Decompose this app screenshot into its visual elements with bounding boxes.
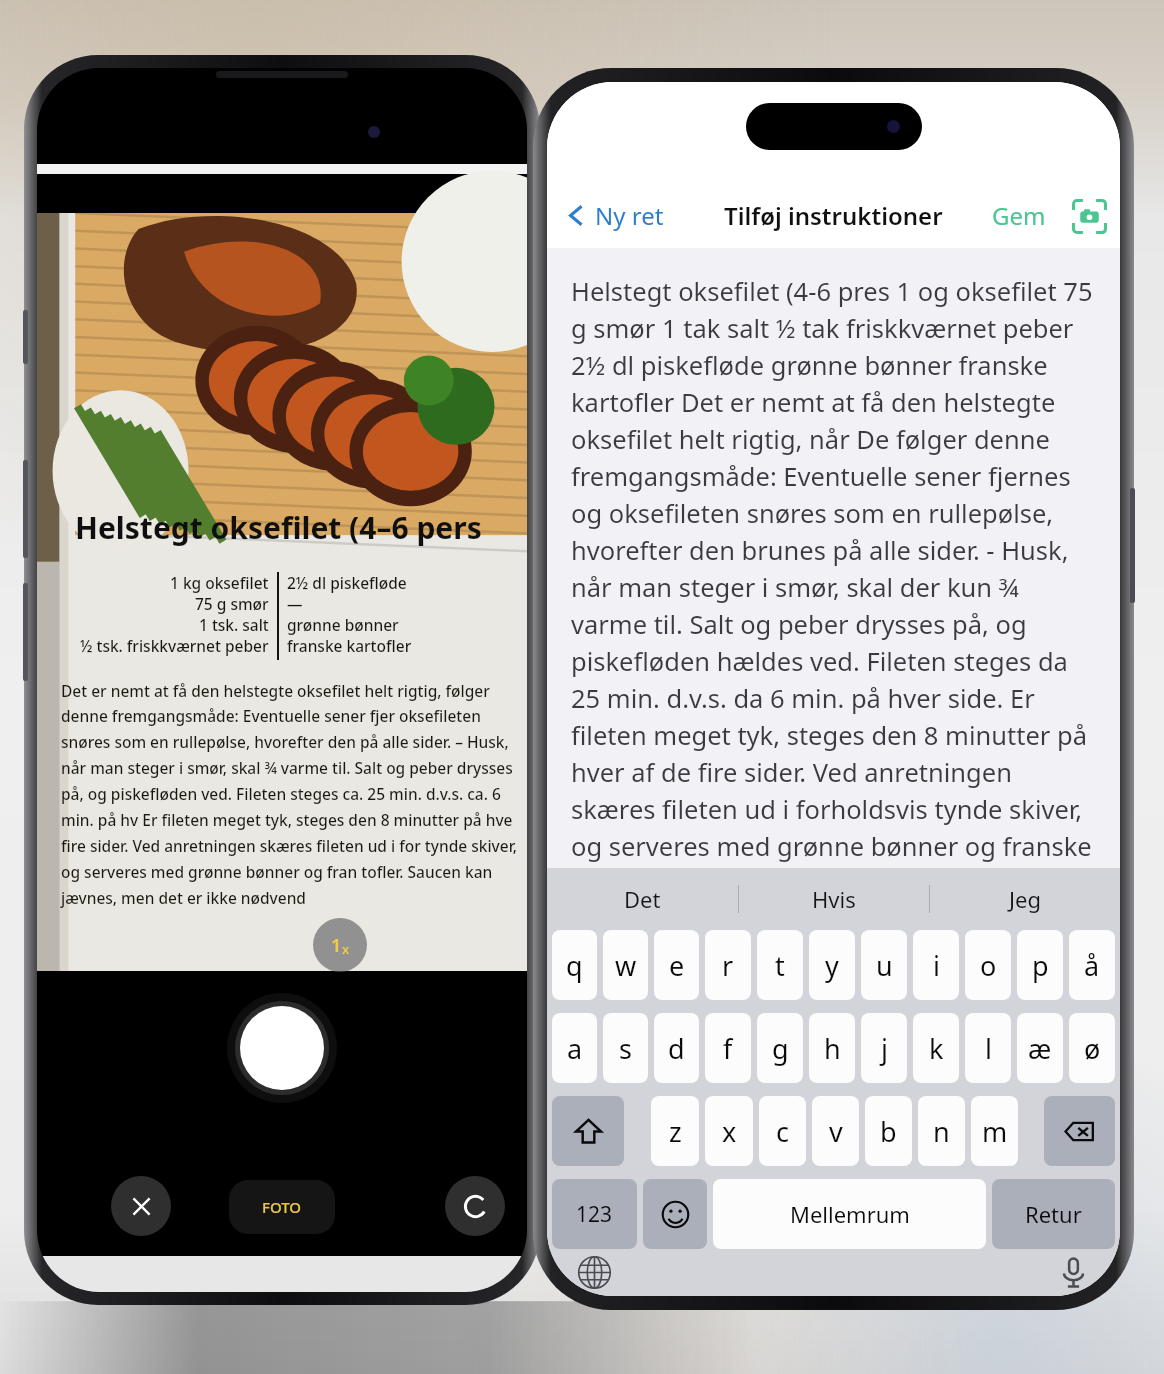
staticText: k (929, 1030, 944, 1067)
button[interactable]: Retur (992, 1179, 1115, 1249)
staticText: Det er nemt at få den helstegte oksefile… (61, 680, 527, 909)
button[interactable]: h (809, 1013, 855, 1083)
staticText: x (722, 1113, 737, 1150)
button[interactable]: Mellemrum (713, 1179, 986, 1249)
button[interactable]: y (809, 930, 855, 1000)
staticText: Ny ret (595, 199, 664, 232)
staticText: Jeg (1009, 884, 1041, 914)
staticText: i (933, 947, 940, 984)
button[interactable]: t (757, 930, 803, 1000)
button[interactable]: Hvis (739, 868, 929, 930)
staticText: b (880, 1113, 897, 1150)
button[interactable]: v (812, 1096, 859, 1166)
button[interactable]: s (603, 1013, 648, 1083)
staticText: ø (1084, 1030, 1101, 1067)
staticText: FOTO (262, 1197, 302, 1217)
button[interactable]: m (971, 1096, 1018, 1166)
staticText: a (567, 1030, 583, 1067)
button[interactable]: u (861, 930, 907, 1000)
staticText: l (985, 1030, 992, 1067)
button[interactable]: Switch camera (445, 1176, 505, 1236)
button[interactable]: Helstegt oksefilet (4–6 pers (37, 213, 527, 971)
staticText: w (615, 947, 637, 984)
button[interactable]: 123 (552, 1179, 637, 1249)
button[interactable]: n (918, 1096, 965, 1166)
staticText: d (668, 1030, 685, 1067)
staticText: g (772, 1030, 789, 1067)
button[interactable]: o (965, 930, 1011, 1000)
button[interactable]: Take photo (227, 993, 337, 1103)
staticText: x (342, 940, 350, 958)
button[interactable]: Dictate (1046, 1249, 1100, 1296)
staticText: t (775, 947, 785, 984)
button[interactable]: w (603, 930, 648, 1000)
button[interactable]: Change keyboard (567, 1249, 621, 1296)
staticText: Det (624, 884, 661, 914)
button[interactable]: Gem (986, 191, 1052, 240)
button[interactable]: ø (1069, 1013, 1115, 1083)
button[interactable]: d (654, 1013, 699, 1083)
staticText: grønne bønner (287, 614, 399, 635)
staticText: 123 (576, 1200, 613, 1229)
button[interactable]: Helstegt oksefilet (4-6 pres 1 og oksefi… (547, 248, 1120, 868)
staticText: q (566, 947, 583, 984)
staticText: ½ tsk. friskkværnet peber (80, 635, 269, 656)
staticText: 2½ dl piskefløde (287, 572, 407, 593)
button[interactable]: b (865, 1096, 912, 1166)
staticText: Mellemrum (790, 1199, 910, 1229)
staticText: v (829, 1113, 843, 1150)
staticText: z (669, 1113, 682, 1150)
staticText: Helstegt oksefilet (4-6 pres 1 og oksefi… (571, 274, 1098, 868)
staticText: p (1032, 947, 1049, 984)
staticText: å (1084, 947, 1100, 984)
button[interactable]: j (861, 1013, 907, 1083)
staticText: æ (1028, 1030, 1052, 1067)
button[interactable]: Zoom 1x (313, 918, 367, 972)
staticText: r (722, 947, 734, 984)
staticText: 1 kg oksefilet (170, 572, 269, 593)
button[interactable]: k (913, 1013, 959, 1083)
staticText: Hvis (812, 884, 856, 914)
button[interactable]: c (759, 1096, 806, 1166)
button[interactable]: Jeg (930, 868, 1120, 930)
button[interactable]: i (913, 930, 959, 1000)
staticText: f (723, 1030, 733, 1067)
staticText: o (980, 947, 997, 984)
staticText: y (825, 947, 839, 984)
button[interactable]: a (552, 1013, 597, 1083)
button[interactable]: e (654, 930, 699, 1000)
button[interactable]: Scan text (1066, 193, 1112, 239)
button[interactable]: Det (547, 868, 738, 930)
button[interactable]: x (705, 1096, 753, 1166)
button[interactable]: z (651, 1096, 699, 1166)
button[interactable]: Shift (552, 1096, 624, 1166)
staticText: n (933, 1113, 950, 1150)
staticText: 75 g smør (195, 593, 269, 614)
button[interactable]: FOTO (229, 1180, 335, 1234)
staticText: u (876, 947, 893, 984)
staticText: m (982, 1113, 1008, 1150)
staticText: franske kartofler (287, 635, 412, 656)
staticText: — (287, 593, 303, 614)
button[interactable]: r (705, 930, 751, 1000)
staticText: j (881, 1030, 888, 1067)
staticText: Tilføj instruktioner (724, 199, 943, 232)
staticText: 1 tsk. salt (199, 614, 269, 635)
button[interactable]: p (1017, 930, 1063, 1000)
button[interactable]: æ (1017, 1013, 1063, 1083)
button[interactable]: å (1069, 930, 1115, 1000)
button[interactable]: Close (111, 1176, 171, 1236)
button[interactable]: q (552, 930, 597, 1000)
button[interactable]: Emoji (643, 1179, 707, 1249)
button[interactable]: g (757, 1013, 803, 1083)
button[interactable]: Ny ret (559, 191, 670, 240)
staticText: Gem (992, 199, 1046, 232)
staticText: h (824, 1030, 841, 1067)
staticText: Helstegt oksefilet (4–6 pers (75, 507, 482, 548)
button[interactable]: l (965, 1013, 1011, 1083)
button[interactable]: Backspace (1044, 1096, 1115, 1166)
button[interactable]: f (705, 1013, 751, 1083)
staticText: c (776, 1113, 789, 1150)
staticText: 1 (331, 933, 342, 958)
staticText: Retur (1025, 1199, 1082, 1229)
